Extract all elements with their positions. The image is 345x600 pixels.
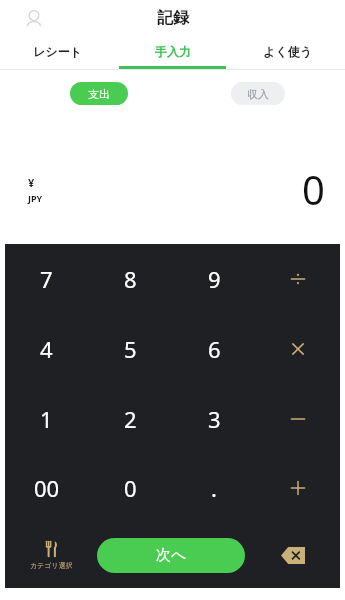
staticText: よく使う (263, 44, 312, 59)
button[interactable]: よく使う (230, 36, 345, 66)
staticText: 1 (40, 404, 53, 434)
staticText: 手入力 (155, 44, 191, 59)
staticText: 6 (208, 334, 221, 364)
button[interactable]: Profile (22, 6, 46, 30)
staticText: 記録 (157, 8, 189, 28)
button[interactable]: 1 (5, 384, 88, 453)
button[interactable]: 0 (88, 453, 172, 522)
staticText: 9 (208, 264, 221, 294)
staticText: 00 (34, 473, 60, 503)
button[interactable]: 2 (88, 384, 172, 453)
staticText: 7 (40, 264, 53, 294)
button[interactable]: . (172, 453, 256, 522)
staticText: 5 (124, 334, 137, 364)
button[interactable]: 支出 (70, 82, 128, 105)
staticText: 4 (40, 334, 53, 364)
button[interactable]: Backspace (245, 522, 340, 588)
staticText: カテゴリ選択 (30, 561, 73, 570)
staticText: 支出 (88, 87, 110, 101)
button[interactable]: 6 (172, 314, 256, 384)
button[interactable]: 収入 (231, 82, 285, 105)
staticText: 収入 (247, 87, 269, 101)
button[interactable]: 次へ (97, 538, 245, 573)
staticText: ¥ (28, 175, 35, 190)
button[interactable]: Subtract (256, 384, 340, 453)
button[interactable]: 7 (5, 244, 88, 314)
button[interactable]: Multiply (256, 314, 340, 384)
button[interactable]: レシート (0, 36, 115, 66)
button[interactable]: 3 (172, 384, 256, 453)
button[interactable]: 5 (88, 314, 172, 384)
button[interactable]: 手入力 (115, 36, 230, 66)
staticText: 次へ (156, 546, 187, 565)
button[interactable]: カテゴリ選択 (5, 522, 97, 588)
staticText: レシート (33, 44, 82, 59)
button[interactable]: 4 (5, 314, 88, 384)
staticText: . (211, 473, 217, 503)
staticText: 8 (124, 264, 137, 294)
button[interactable]: 00 (5, 453, 88, 522)
button[interactable]: Add (256, 453, 340, 522)
button[interactable]: 9 (172, 244, 256, 314)
button[interactable]: Divide (256, 244, 340, 314)
staticText: 2 (124, 404, 137, 434)
staticText: 3 (208, 404, 221, 434)
staticText: JPY (28, 192, 43, 204)
staticText: 0 (302, 162, 325, 216)
button[interactable]: 8 (88, 244, 172, 314)
staticText: 0 (124, 473, 137, 503)
